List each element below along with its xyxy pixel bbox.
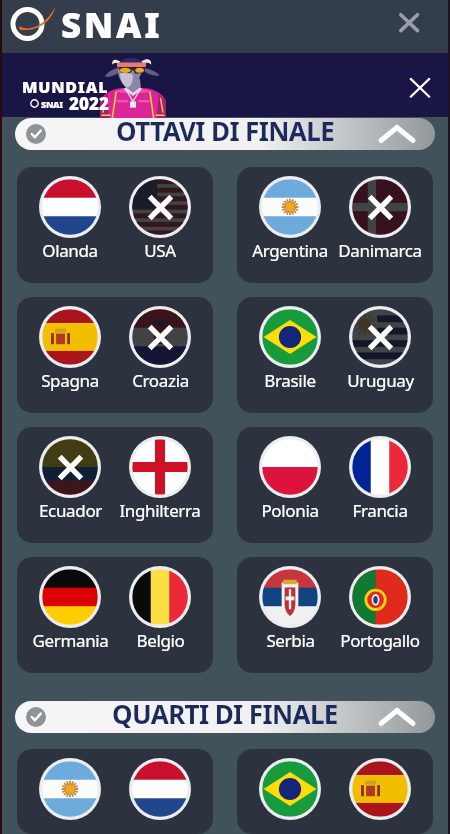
button[interactable]: QUARTI DI FINALE bbox=[15, 701, 435, 733]
staticText: SNAI bbox=[61, 1, 163, 49]
button[interactable]: Germania bbox=[17, 557, 213, 673]
staticText: Argentina bbox=[252, 239, 328, 262]
button[interactable]: Olanda bbox=[17, 167, 213, 283]
button[interactable]: Polonia bbox=[237, 427, 433, 543]
staticText: Francia bbox=[352, 499, 408, 522]
staticText: Serbia bbox=[266, 629, 315, 652]
button[interactable]: Argentina bbox=[17, 749, 213, 834]
staticText: Ecuador bbox=[39, 499, 102, 522]
staticText: Germania bbox=[32, 629, 109, 652]
button[interactable]: Close bbox=[393, 7, 425, 39]
button[interactable]: Brasile bbox=[237, 297, 433, 413]
staticText: 2022 bbox=[69, 92, 109, 115]
staticText: Olanda bbox=[42, 239, 98, 262]
button[interactable]: Brasile bbox=[237, 749, 433, 834]
button[interactable]: OTTAVI DI FINALE bbox=[15, 118, 435, 150]
staticText: Portogallo bbox=[340, 629, 420, 652]
button[interactable]: Ecuador bbox=[17, 427, 213, 543]
staticText: Polonia bbox=[261, 499, 319, 522]
staticText: Spagna bbox=[41, 369, 99, 392]
button[interactable]: Argentina bbox=[237, 167, 433, 283]
staticText: QUARTI DI FINALE bbox=[112, 701, 338, 728]
staticText: Uruguay bbox=[347, 369, 414, 392]
staticText: USA bbox=[144, 239, 176, 262]
button[interactable]: Spagna bbox=[17, 297, 213, 413]
staticText: Danimarca bbox=[338, 239, 422, 262]
staticText: OTTAVI DI FINALE bbox=[116, 118, 335, 145]
button[interactable]: Close banner bbox=[406, 74, 434, 102]
staticText: Croazia bbox=[132, 369, 189, 392]
staticText: Inghilterra bbox=[119, 499, 201, 522]
staticText: Belgio bbox=[136, 629, 185, 652]
staticText: MUNDIAL bbox=[22, 76, 109, 98]
staticText: Brasile bbox=[264, 369, 316, 392]
button[interactable]: Serbia bbox=[237, 557, 433, 673]
staticText: SNAI bbox=[41, 98, 63, 110]
